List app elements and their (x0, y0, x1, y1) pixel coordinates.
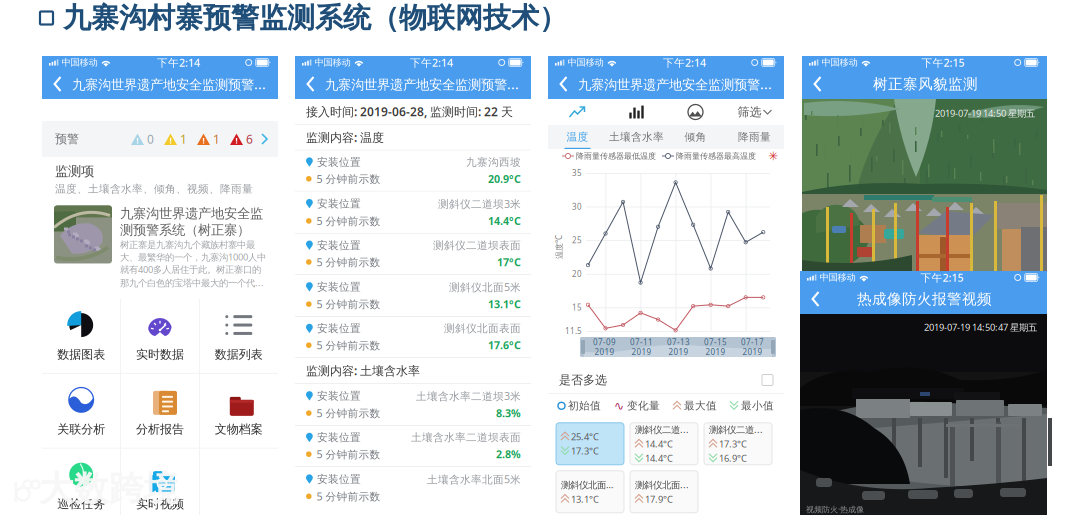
button[interactable]: 安装位置 (295, 234, 531, 274)
staticText: 5 分钟前示数 (317, 214, 381, 228)
staticText: 14.4°C (645, 438, 673, 450)
staticText: 5 分钟前示数 (317, 447, 381, 461)
staticText: 变化量 (624, 399, 660, 412)
staticText: 数据图表 (57, 347, 105, 362)
staticText: 降雨量传感器最高温度 (674, 151, 756, 161)
button[interactable]: 温度 (548, 125, 607, 149)
staticText: 14.4°C (645, 452, 673, 464)
staticText: 5 分钟前示数 (317, 489, 381, 503)
staticText: 安装位置 (317, 322, 361, 335)
button[interactable]: 趋势图 (548, 100, 607, 124)
button[interactable]: 倾角 (666, 125, 725, 149)
staticText: 2.8% (496, 447, 521, 461)
staticText: 20.9°C (488, 172, 521, 186)
staticText: 测斜仪北面表面… (635, 478, 693, 491)
button[interactable]: 安装位置 (295, 426, 531, 466)
staticText: 5 分钟前示数 (317, 406, 381, 420)
staticText: 温度、土壤含水率、倾角、视频、降雨量 (55, 182, 253, 195)
staticText: 九寨沟世界遗产地安全监测预警系统（树正寨） (120, 205, 263, 238)
staticText: 测斜仪二道坝表… (709, 423, 767, 436)
button[interactable]: 测斜仪北面表面… (630, 471, 698, 513)
staticText: 测斜仪北面5米 (449, 280, 521, 294)
button[interactable]: 预警 (42, 121, 278, 157)
staticText: 温度°C (547, 242, 571, 252)
staticText: 测斜仪二道坝3… (635, 423, 693, 436)
button[interactable]: 25.4°C (556, 423, 624, 465)
button[interactable]: 测斜仪二道坝3… (630, 423, 698, 465)
staticText: 安装位置 (317, 239, 361, 252)
staticText: 2019-07-19 14:50 星期五 (935, 107, 1035, 119)
staticText: 中国移动 (816, 272, 858, 283)
staticText: 九寨沟世界遗产地安全监测预警系统（… (325, 75, 526, 93)
staticText: 文物档案 (215, 422, 263, 437)
button[interactable]: 数据列表 (200, 299, 278, 373)
staticText: 5 分钟前示数 (317, 338, 381, 352)
button[interactable]: 安装位置 (295, 192, 531, 233)
button[interactable]: 巡检任务 (42, 448, 120, 515)
staticText: 接入时间: 2019-06-28, 监测时间: 22 天 (306, 103, 513, 119)
button[interactable]: 返回 (302, 69, 320, 99)
staticText: 8.3% (496, 406, 521, 420)
staticText: ∿ (614, 399, 624, 413)
staticText: 14.4°C (488, 214, 521, 228)
staticText: 树正寨风貌监测 (873, 75, 978, 93)
staticText: 30 (572, 201, 582, 212)
staticText: 初始值 (565, 399, 601, 412)
staticText: 下午2:14 (663, 55, 706, 70)
staticText: 07-17 (741, 337, 764, 347)
button[interactable]: 安装位置 (295, 151, 531, 191)
staticText: 15 (572, 302, 582, 313)
button[interactable]: 测斜仪北面5米… (556, 471, 624, 513)
staticText: 1 (180, 131, 187, 147)
staticText: 安装位置 (317, 197, 361, 210)
staticText: 6 (246, 131, 253, 147)
button[interactable]: 降雨量 (725, 125, 784, 149)
button[interactable]: 文物档案 (200, 374, 278, 448)
button[interactable]: 实时视频 (121, 448, 199, 515)
staticText: 20 (572, 268, 582, 279)
staticText: 视频防火·热成像 (806, 504, 864, 515)
button[interactable]: 返回 (555, 69, 573, 99)
button[interactable]: 筛选 (725, 100, 784, 124)
staticText: 监测项 (55, 163, 94, 179)
staticText: 九寨沟村寨预警监测系统（物联网技术） (63, 1, 567, 35)
button[interactable]: 分析报告 (121, 374, 199, 448)
staticText: 倾角 (684, 130, 706, 143)
button[interactable]: 关联分析 (42, 374, 120, 448)
staticText: 25 (572, 235, 582, 245)
staticText: 0 (147, 131, 154, 147)
button[interactable]: 返回 (49, 69, 67, 99)
button[interactable]: 安装位置 (295, 467, 531, 508)
button[interactable]: 数据图表 (42, 299, 120, 373)
staticText: 最小值 (738, 399, 774, 412)
staticText: 5 分钟前示数 (317, 297, 381, 311)
button[interactable]: 实时数据 (121, 299, 199, 373)
staticText: 测斜仪二道坝表面 (433, 239, 521, 252)
button[interactable]: 测斜仪二道坝表… (704, 423, 772, 465)
button[interactable]: 返回 (807, 284, 825, 314)
button[interactable]: 柱状图 (607, 100, 666, 124)
button[interactable]: 安装位置 (295, 317, 531, 357)
staticText: 那九个白色的宝塔中最大的一个代表的是… (120, 276, 270, 289)
staticText: 2019 (742, 346, 762, 357)
button[interactable]: 返回 (809, 69, 827, 99)
button[interactable]: 安装位置 (295, 275, 531, 316)
staticText: 树正寨是九寨沟九个藏族村寨中最大、最繁华的一个，九寨沟1000人中就有400多人… (120, 239, 266, 275)
staticText: 25.4°C (571, 430, 599, 443)
staticText: 中国移动 (311, 57, 353, 68)
staticText: 筛选 (737, 105, 761, 119)
staticText: 07-15 (704, 337, 727, 347)
staticText: 中国移动 (564, 57, 606, 68)
staticText: 安装位置 (317, 389, 361, 402)
staticText: 监测内容: 土壤含水率 (306, 363, 420, 378)
staticText: 最大值 (681, 399, 717, 412)
staticText: 2019 (631, 346, 651, 357)
button[interactable]: 饼图 (666, 100, 725, 124)
staticText: 九寨沟世界遗产地安全监测预警系统（… (578, 75, 779, 93)
button[interactable]: 安装位置 (295, 384, 531, 425)
staticText: 2019-07-19 14:50:47 星期五 (924, 321, 1037, 333)
button[interactable]: 土壤含水率 (607, 125, 666, 149)
staticText: 土壤含水率 (609, 130, 664, 143)
staticText: 2019 (668, 346, 688, 357)
